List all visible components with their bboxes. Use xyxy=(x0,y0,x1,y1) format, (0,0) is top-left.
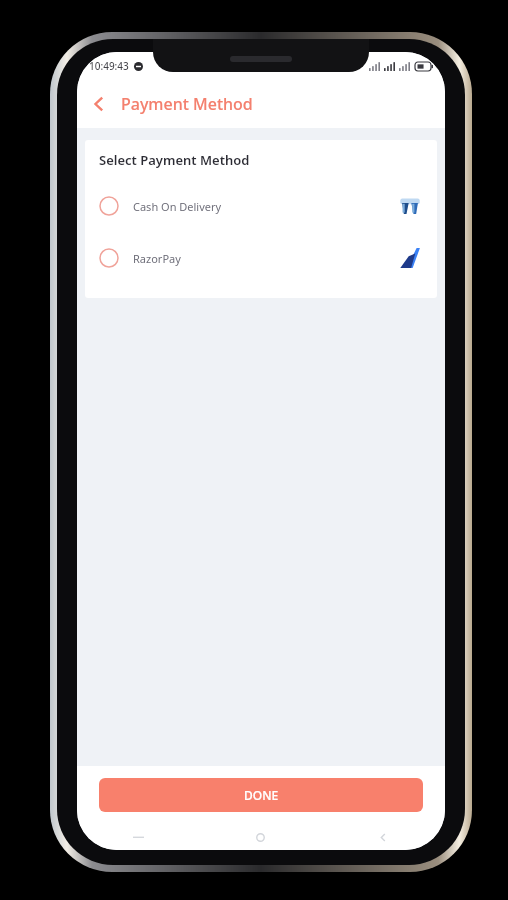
staticText: Select Payment Method xyxy=(99,151,250,169)
button[interactable]: Back xyxy=(322,824,445,850)
button[interactable]: RazorPay xyxy=(85,232,437,284)
button[interactable]: Back xyxy=(77,82,121,126)
staticText: DONE xyxy=(244,787,279,803)
staticText: Payment Method xyxy=(121,93,253,115)
staticText: RazorPay xyxy=(133,251,181,266)
staticText: 10:49:43 xyxy=(89,59,129,73)
button[interactable]: DONE xyxy=(99,778,423,812)
button[interactable]: Recents xyxy=(77,824,199,850)
staticText: Cash On Delivery xyxy=(133,199,222,214)
button[interactable]: Cash On Delivery xyxy=(85,180,437,232)
button[interactable]: Home xyxy=(199,824,322,850)
